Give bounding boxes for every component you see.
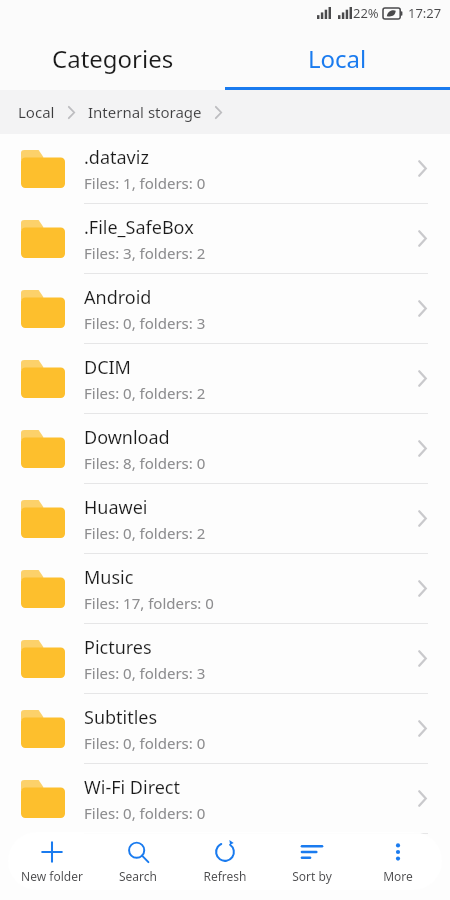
staticText: Files: 0, folders: 2 — [84, 383, 206, 403]
staticText: Files: 0, folders: 2 — [84, 523, 206, 543]
button[interactable]: Sort by — [269, 835, 355, 888]
staticText: New folder — [21, 868, 83, 884]
staticText: Local — [308, 42, 367, 75]
staticText: More — [383, 868, 413, 884]
button[interactable]: New folder — [9, 835, 95, 888]
staticText: Download — [84, 425, 170, 450]
staticText: 17:27 — [408, 4, 442, 22]
staticText: Internal storage — [88, 102, 202, 122]
staticText: Search — [119, 868, 157, 884]
staticText: Android — [84, 285, 152, 310]
staticText: Files: 0, folders: 0 — [84, 803, 206, 823]
staticText: Music — [84, 565, 134, 590]
button[interactable]: Local — [18, 102, 55, 122]
button[interactable]: Android — [0, 274, 450, 344]
staticText: Sort by — [292, 868, 332, 884]
staticText: Files: 0, folders: 3 — [84, 663, 206, 683]
staticText: Pictures — [84, 635, 152, 660]
staticText: Subtitles — [84, 705, 158, 730]
button[interactable]: Refresh — [182, 835, 268, 888]
button[interactable]: More — [355, 835, 441, 888]
button[interactable]: DCIM — [0, 344, 450, 414]
staticText: Files: 3, folders: 2 — [84, 243, 206, 263]
staticText: Files: 0, folders: 0 — [84, 733, 206, 753]
staticText: Files: 0, folders: 3 — [84, 313, 206, 333]
staticText: Files: 17, folders: 0 — [84, 593, 214, 613]
staticText: Local — [18, 102, 55, 122]
button[interactable]: Music — [0, 554, 450, 624]
staticText: DCIM — [84, 355, 131, 380]
button[interactable]: Pictures — [0, 624, 450, 694]
staticText: Categories — [52, 42, 174, 75]
button[interactable]: Subtitles — [0, 694, 450, 764]
button[interactable]: Search — [95, 835, 181, 888]
button[interactable]: .File_SafeBox — [0, 204, 450, 274]
staticText: .dataviz — [84, 145, 149, 170]
staticText: .File_SafeBox — [84, 215, 194, 240]
staticText: Refresh — [203, 868, 247, 884]
staticText: Huawei — [84, 495, 148, 520]
staticText: Files: 1, folders: 0 — [84, 173, 206, 193]
button[interactable]: .dataviz — [0, 134, 450, 204]
button[interactable]: Huawei — [0, 484, 450, 554]
button[interactable]: Download — [0, 414, 450, 484]
staticText: Wi-Fi Direct — [84, 775, 180, 800]
button[interactable]: Internal storage — [88, 102, 202, 122]
button[interactable]: Wi-Fi Direct — [0, 764, 450, 834]
staticText: Files: 8, folders: 0 — [84, 453, 206, 473]
button[interactable]: Categories — [0, 26, 225, 90]
staticText: 22% — [353, 4, 379, 22]
button[interactable]: Local — [225, 26, 450, 90]
